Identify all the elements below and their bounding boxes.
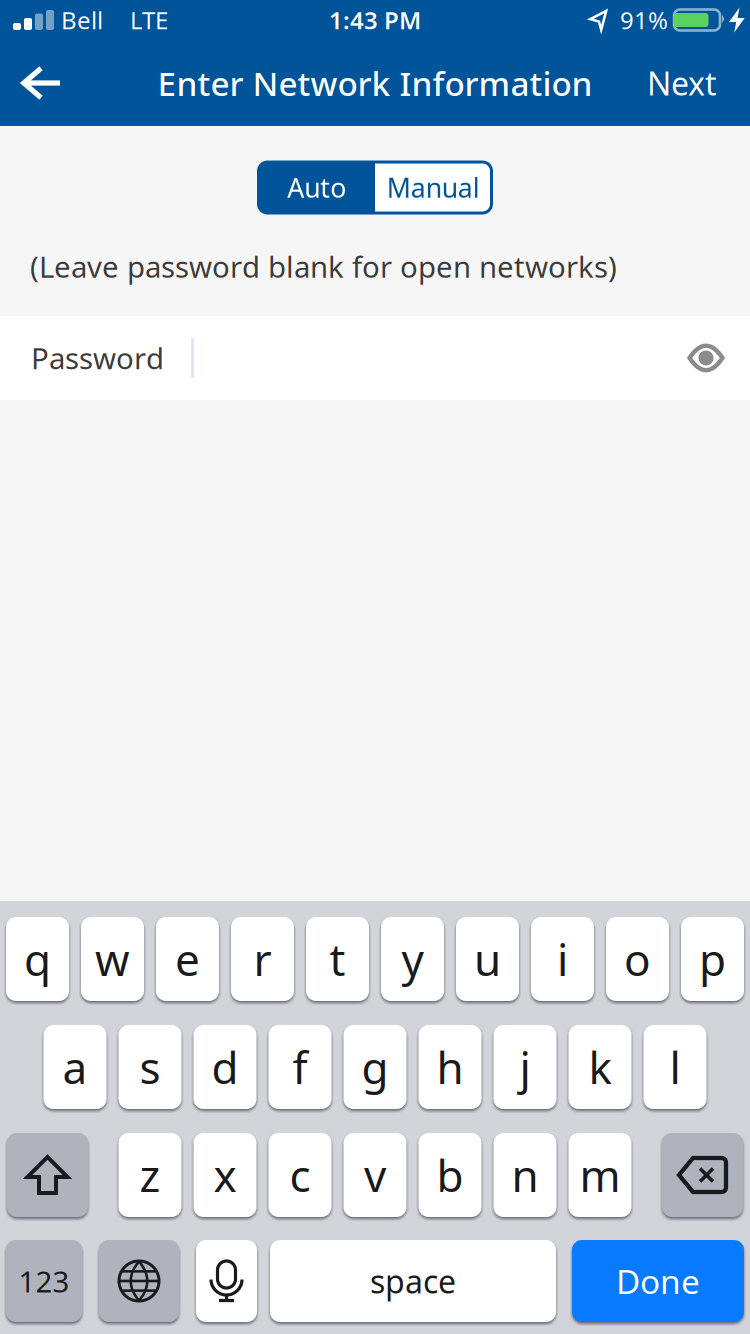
staticText: 1:43 PM xyxy=(329,4,421,36)
button[interactable]: Password xyxy=(0,316,688,400)
staticText: Password xyxy=(31,338,164,377)
staticText: Auto xyxy=(287,170,346,205)
staticText: i xyxy=(557,930,568,988)
button[interactable]: Done xyxy=(572,1240,744,1322)
staticText: h xyxy=(436,1038,463,1096)
button[interactable]: j xyxy=(493,1025,556,1109)
staticText: w xyxy=(95,930,130,988)
staticText: u xyxy=(474,930,501,988)
staticText: b xyxy=(436,1146,463,1204)
staticText: a xyxy=(62,1038,87,1096)
button[interactable]: w xyxy=(81,917,144,1001)
button[interactable]: space xyxy=(270,1240,556,1322)
staticText: z xyxy=(139,1146,160,1204)
button[interactable]: h xyxy=(418,1025,481,1109)
button[interactable]: Show password xyxy=(688,345,750,371)
button[interactable]: c xyxy=(268,1133,331,1217)
button[interactable]: a xyxy=(43,1025,106,1109)
button[interactable]: l xyxy=(643,1025,706,1109)
button[interactable]: Auto xyxy=(258,162,375,213)
staticText: m xyxy=(579,1146,620,1204)
button[interactable]: q xyxy=(6,917,69,1001)
staticText: Next xyxy=(647,62,717,104)
staticText: LTE xyxy=(130,4,168,36)
button[interactable]: x xyxy=(193,1133,256,1217)
button[interactable]: y xyxy=(381,917,444,1001)
staticText: Done xyxy=(616,1259,700,1303)
button[interactable]: k xyxy=(568,1025,631,1109)
button[interactable]: g xyxy=(343,1025,406,1109)
staticText: (Leave password blank for open networks) xyxy=(30,247,617,286)
staticText: c xyxy=(289,1146,310,1204)
staticText: r xyxy=(253,930,271,988)
button[interactable]: Shift xyxy=(7,1133,88,1217)
staticText: Bell xyxy=(61,4,103,36)
staticText: d xyxy=(211,1038,238,1096)
button[interactable]: s xyxy=(118,1025,181,1109)
staticText: Enter Network Information xyxy=(157,61,592,105)
button[interactable]: v xyxy=(343,1133,406,1217)
staticText: e xyxy=(175,930,200,988)
button[interactable]: u xyxy=(456,917,519,1001)
staticText: 91% xyxy=(620,4,668,36)
staticText: v xyxy=(364,1146,386,1204)
staticText: n xyxy=(511,1146,538,1204)
button[interactable]: Back xyxy=(0,45,61,120)
button[interactable]: n xyxy=(493,1133,556,1217)
button[interactable]: f xyxy=(268,1025,331,1109)
button[interactable]: z xyxy=(118,1133,181,1217)
staticText: Manual xyxy=(387,170,480,205)
staticText: x xyxy=(213,1146,236,1204)
button[interactable]: Next keyboard xyxy=(99,1240,179,1322)
staticText: t xyxy=(329,930,345,988)
button[interactable]: p xyxy=(681,917,744,1001)
staticText: q xyxy=(24,930,51,988)
button[interactable]: m xyxy=(568,1133,631,1217)
button[interactable]: r xyxy=(231,917,294,1001)
staticText: f xyxy=(292,1038,307,1096)
button[interactable]: Dictate xyxy=(196,1240,257,1322)
button[interactable]: i xyxy=(531,917,594,1001)
staticText: j xyxy=(519,1038,530,1096)
button[interactable]: e xyxy=(156,917,219,1001)
button[interactable]: Next xyxy=(647,62,750,104)
staticText: space xyxy=(370,1260,456,1302)
button[interactable]: d xyxy=(193,1025,256,1109)
button[interactable]: Manual xyxy=(375,162,491,213)
staticText: l xyxy=(669,1038,680,1096)
staticText: 123 xyxy=(18,1261,69,1300)
button[interactable]: t xyxy=(306,917,369,1001)
staticText: g xyxy=(361,1038,388,1096)
button[interactable]: o xyxy=(606,917,669,1001)
button[interactable]: Delete xyxy=(662,1133,743,1217)
staticText: k xyxy=(588,1038,611,1096)
button[interactable]: Numbers xyxy=(6,1240,82,1322)
staticText: y xyxy=(401,930,423,988)
staticText: s xyxy=(139,1038,160,1096)
staticText: o xyxy=(624,930,651,988)
staticText: p xyxy=(699,930,726,988)
button[interactable]: b xyxy=(418,1133,481,1217)
